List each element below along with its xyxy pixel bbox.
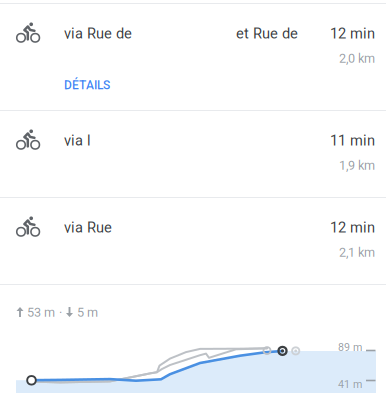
staticText: via l [64, 132, 91, 149]
staticText: 41 m [338, 378, 362, 390]
staticText: via Rue de [64, 25, 132, 42]
staticText: 11 min [330, 132, 375, 149]
staticText: 89 m [338, 341, 362, 353]
staticText: 12 min [330, 219, 375, 236]
button[interactable]: via Rue de [0, 4, 386, 110]
staticText: 2,0 km [339, 51, 375, 66]
button[interactable]: via Rue [0, 198, 386, 284]
staticText: 12 min [330, 25, 375, 42]
staticText: DÉTAILS [64, 78, 110, 92]
staticText: via Rue [64, 219, 112, 236]
staticText: 53 m [27, 305, 55, 320]
staticText: et Rue de [236, 25, 298, 42]
staticText: 1,9 km [339, 158, 375, 173]
staticText: 2,1 km [339, 245, 375, 260]
button[interactable]: via l [0, 111, 386, 197]
staticText: · [59, 305, 62, 320]
staticText: 5 m [77, 305, 98, 320]
